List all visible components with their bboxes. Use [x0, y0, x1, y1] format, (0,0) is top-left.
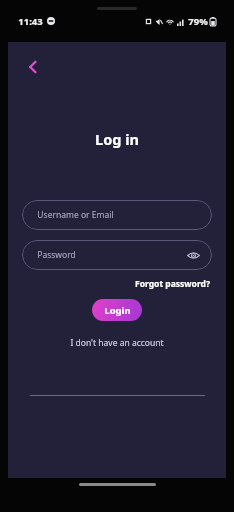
button[interactable]: Username or Email — [22, 200, 212, 230]
staticText: Username or Email — [37, 209, 114, 221]
staticText: 79% — [188, 15, 208, 28]
staticText: Password — [37, 249, 76, 261]
staticText: Login — [104, 304, 131, 317]
button[interactable]: Show password — [184, 246, 202, 264]
staticText: Forgot password? — [135, 278, 210, 290]
button[interactable]: I don't have an account — [66, 335, 168, 351]
button[interactable]: Password — [22, 240, 212, 270]
button[interactable]: Back — [20, 54, 46, 80]
button[interactable]: Login — [92, 299, 142, 321]
staticText: 11:43 — [18, 15, 43, 28]
staticText: I don't have an account — [70, 337, 164, 349]
button[interactable]: Forgot password? — [133, 276, 212, 292]
staticText: Log in — [95, 129, 139, 149]
